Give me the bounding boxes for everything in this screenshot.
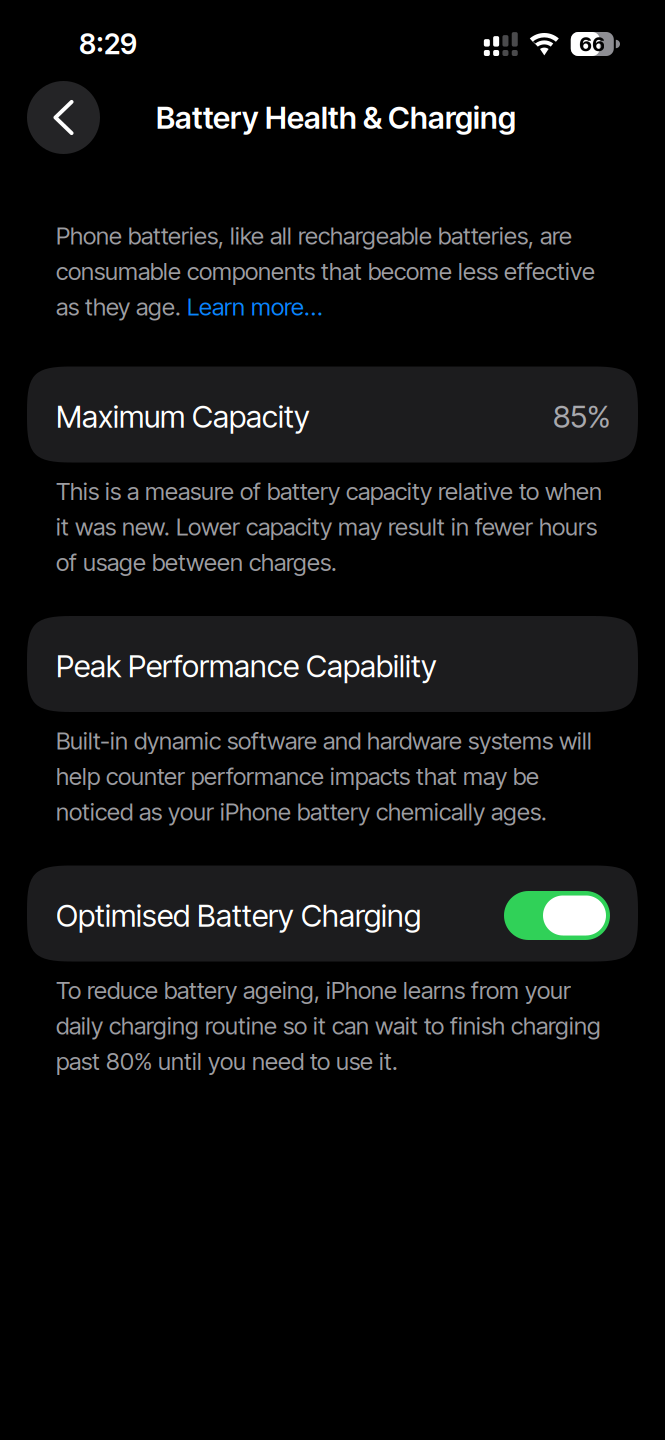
- button[interactable]: Optimised Battery Charging: [27, 865, 638, 961]
- staticText: Learn more…: [187, 293, 323, 321]
- staticText: consumable components that become less e…: [56, 257, 595, 285]
- staticText: daily charging routine so it can wait to…: [56, 1012, 601, 1040]
- staticText: 85%: [553, 398, 610, 435]
- staticText: This is a measure of battery capacity re…: [56, 477, 602, 505]
- staticText: Maximum Capacity: [56, 398, 310, 435]
- staticText: past 80% until you need to use it.: [56, 1047, 398, 1075]
- staticText: Battery Health & Charging: [156, 99, 516, 136]
- staticText: To reduce battery ageing, iPhone learns …: [56, 976, 571, 1004]
- staticText: Phone batteries, like all rechargeable b…: [56, 222, 572, 250]
- staticText: noticed as your iPhone battery chemicall…: [56, 798, 547, 826]
- staticText: as they age.: [56, 293, 187, 321]
- staticText: it was new. Lower capacity may result in…: [56, 513, 597, 541]
- staticText: 8:29: [79, 27, 137, 60]
- staticText: Peak Performance Capability: [56, 648, 437, 684]
- staticText: Built-in dynamic software and hardware s…: [56, 727, 592, 755]
- button[interactable]: Back: [27, 81, 100, 154]
- button[interactable]: Learn more…: [187, 293, 323, 321]
- button[interactable]: Peak Performance Capability: [27, 616, 638, 712]
- staticText: of usage between charges.: [56, 548, 337, 576]
- button[interactable]: Maximum Capacity: [27, 366, 638, 462]
- staticText: help counter performance impacts that ma…: [56, 762, 539, 790]
- staticText: 66: [579, 32, 605, 56]
- staticText: Optimised Battery Charging: [56, 897, 421, 934]
